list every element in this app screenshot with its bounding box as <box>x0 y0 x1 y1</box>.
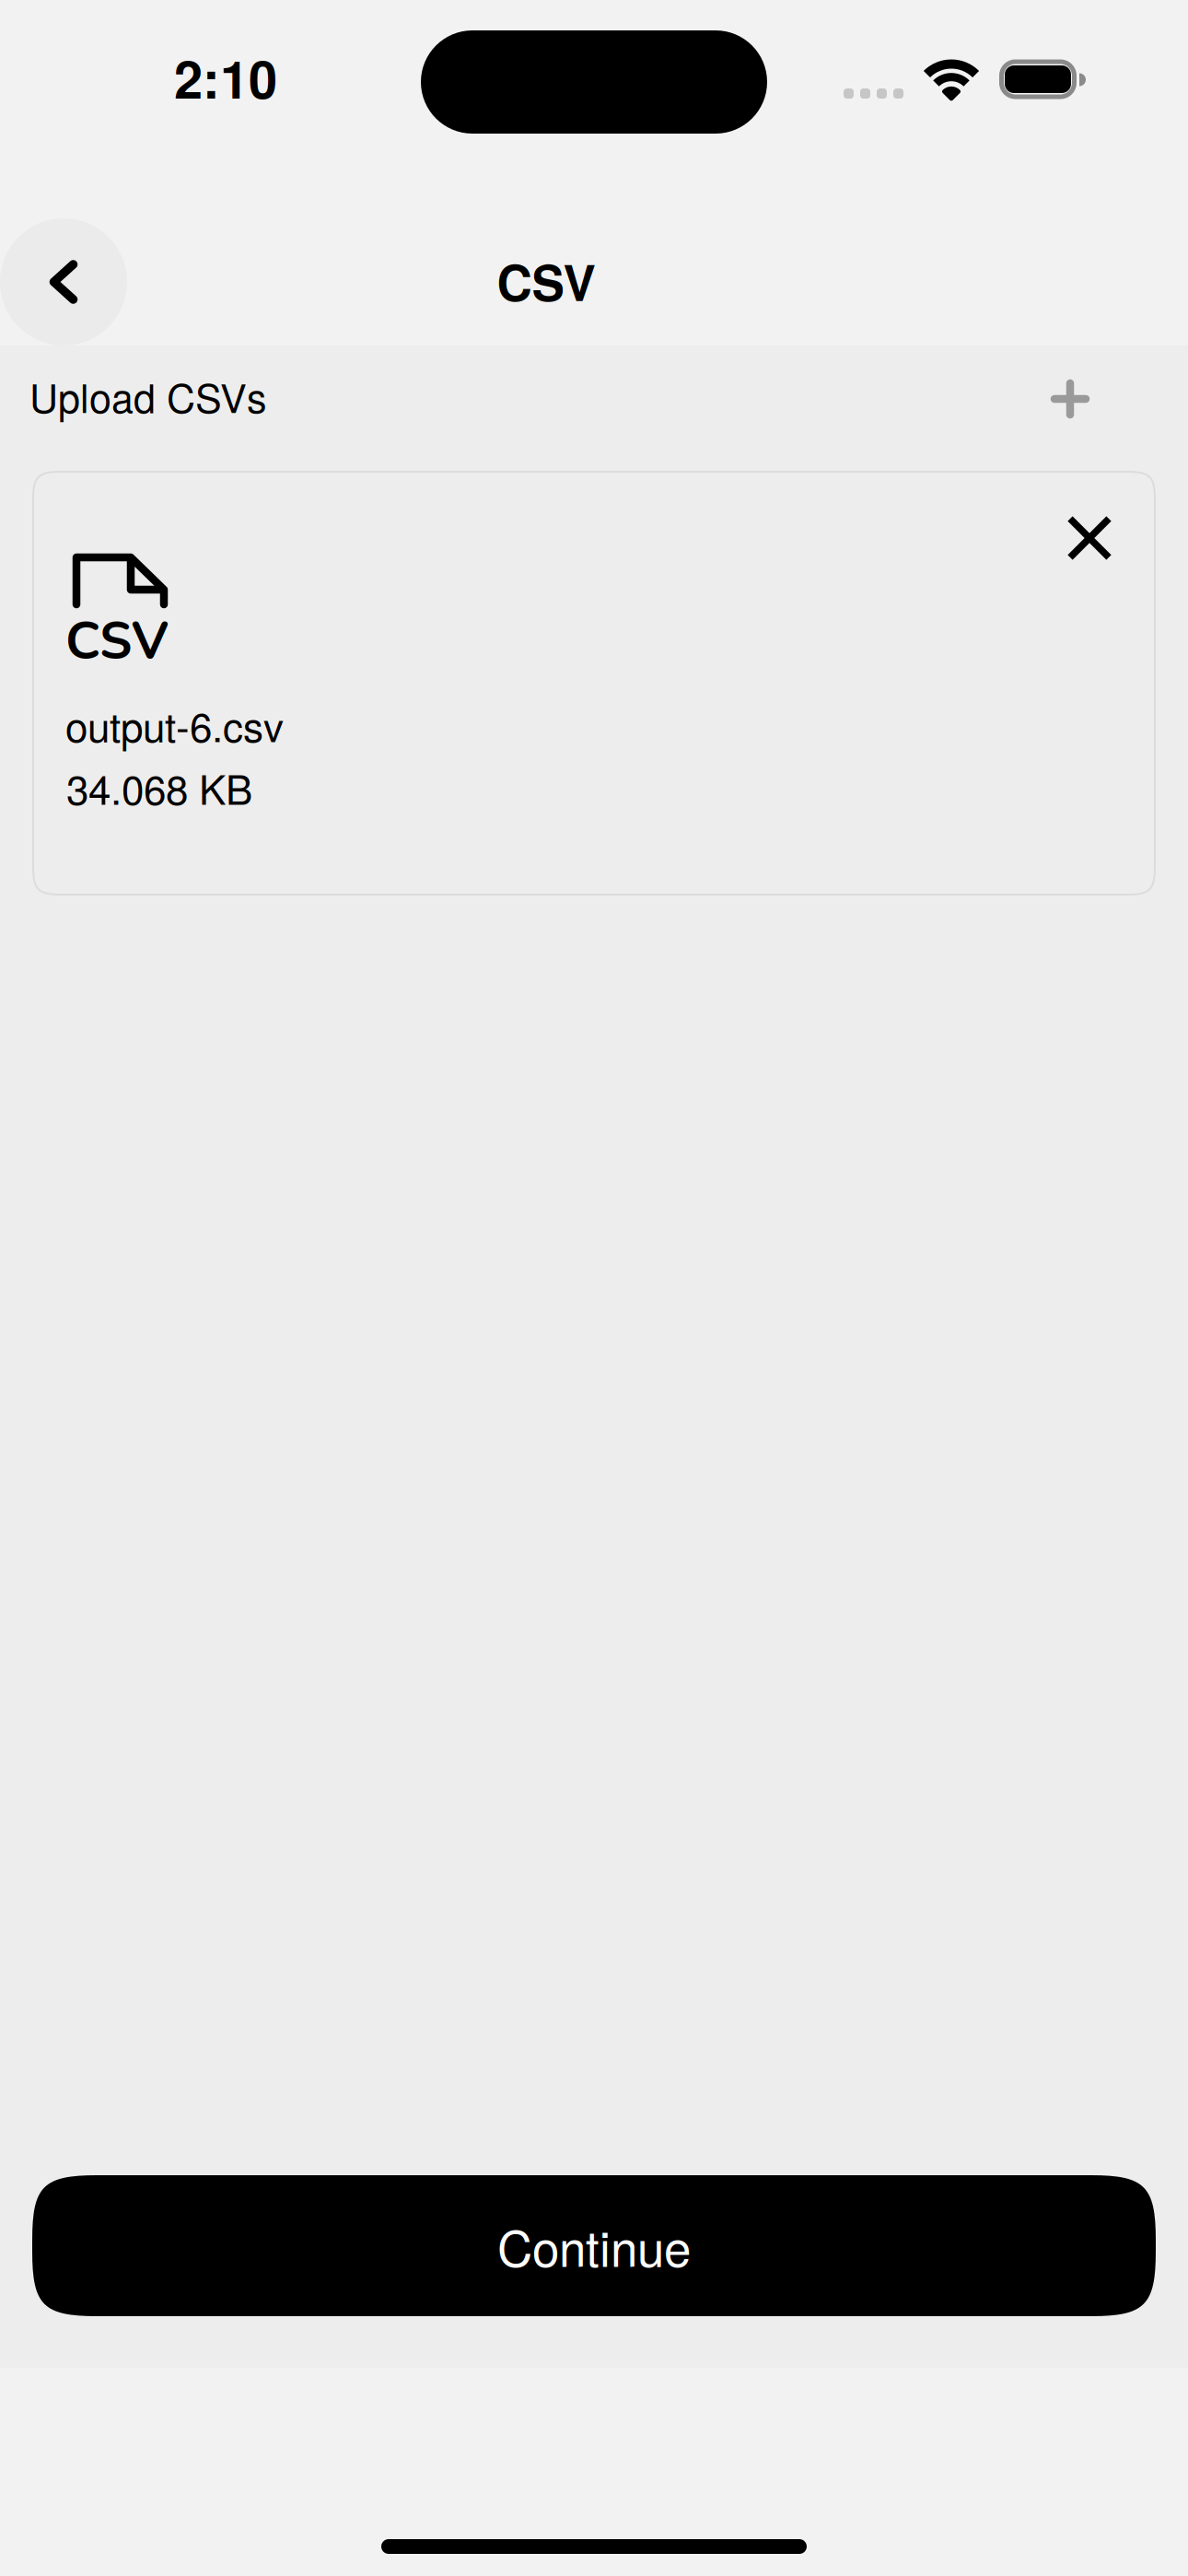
button[interactable]: Continue <box>32 2175 1156 2316</box>
staticText: CSV <box>65 606 169 677</box>
staticText: 34.068 KB <box>66 758 252 816</box>
button[interactable]: Remove output-6.csv <box>1043 492 1136 584</box>
button[interactable]: Add CSV <box>1030 358 1111 439</box>
button[interactable]: Back <box>0 218 127 345</box>
staticText: CSV <box>497 246 595 316</box>
staticText: Continue <box>497 2211 691 2281</box>
staticText: 2:10 <box>174 41 277 114</box>
staticText: Upload CSVs <box>29 368 267 424</box>
staticText: output-6.csv <box>65 696 284 754</box>
